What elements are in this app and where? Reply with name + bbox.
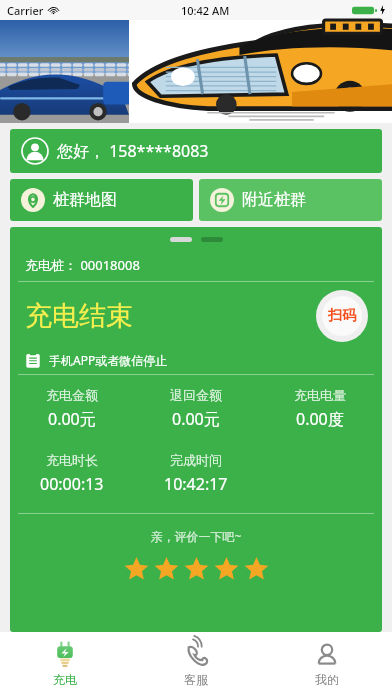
- button[interactable]: 客服: [130, 632, 261, 696]
- staticText: 退回金额: [170, 387, 222, 403]
- button[interactable]: 您好， 158****8083: [10, 129, 382, 173]
- staticText: 充电结束: [25, 299, 133, 333]
- staticText: 充电: [53, 672, 77, 687]
- staticText: 亲，评价一下吧~: [10, 528, 382, 544]
- staticText: 完成时间: [170, 452, 222, 468]
- button[interactable]: 充电: [0, 632, 130, 696]
- staticText: 00:00:13: [40, 473, 104, 495]
- staticText: 桩群地图: [53, 190, 117, 210]
- staticText: 10:42 AM: [181, 3, 230, 18]
- staticText: Carrier: [7, 3, 44, 18]
- staticText: 0.00元: [172, 408, 220, 430]
- button[interactable]: Rate 5 stars: [241, 554, 271, 584]
- staticText: 充电电量: [294, 387, 346, 403]
- staticText: 附近桩群: [242, 190, 306, 210]
- staticText: 充电金额: [46, 387, 98, 403]
- button[interactable]: 扫码 Scan QR code: [316, 290, 368, 342]
- button[interactable]: Rate 4 stars: [211, 554, 241, 584]
- staticText: 我的: [315, 672, 339, 687]
- button[interactable]: Rate 2 stars: [151, 554, 181, 584]
- staticText: 充电桩： 00018008: [25, 256, 140, 274]
- staticText: 您好， 158****8083: [57, 140, 209, 162]
- button[interactable]: Rate 1 stars: [121, 554, 151, 584]
- button[interactable]: 我的: [261, 632, 392, 696]
- staticText: 10:42:17: [164, 473, 228, 495]
- button[interactable]: 桩群地图: [10, 179, 193, 221]
- staticText: 客服: [184, 672, 208, 687]
- staticText: 扫码: [328, 307, 356, 325]
- button[interactable]: 附近桩群: [199, 179, 382, 221]
- staticText: 0.00元: [48, 408, 96, 430]
- staticText: 0.00度: [296, 408, 344, 430]
- staticText: 手机APP或者微信停止: [49, 352, 168, 368]
- button[interactable]: Rate 3 stars: [181, 554, 211, 584]
- staticText: 充电时长: [46, 452, 98, 468]
